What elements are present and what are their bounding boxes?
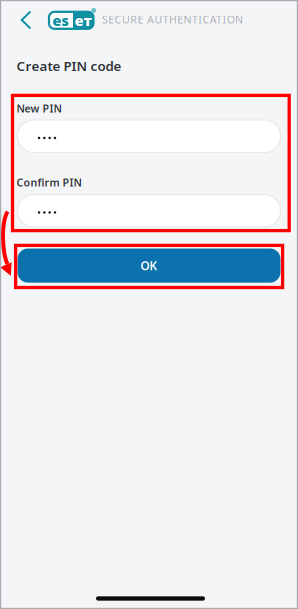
button[interactable]: OK (17, 248, 280, 283)
staticText: eт (75, 11, 92, 30)
staticText: Create PIN code (16, 57, 121, 75)
button[interactable]: Back (10, 0, 42, 40)
staticText: SECURE AUTHENTICATION (102, 12, 243, 27)
staticText: Confirm PIN (17, 175, 82, 190)
staticText: es (52, 11, 69, 30)
staticText: New PIN (17, 101, 62, 115)
staticText: OK (140, 258, 157, 273)
